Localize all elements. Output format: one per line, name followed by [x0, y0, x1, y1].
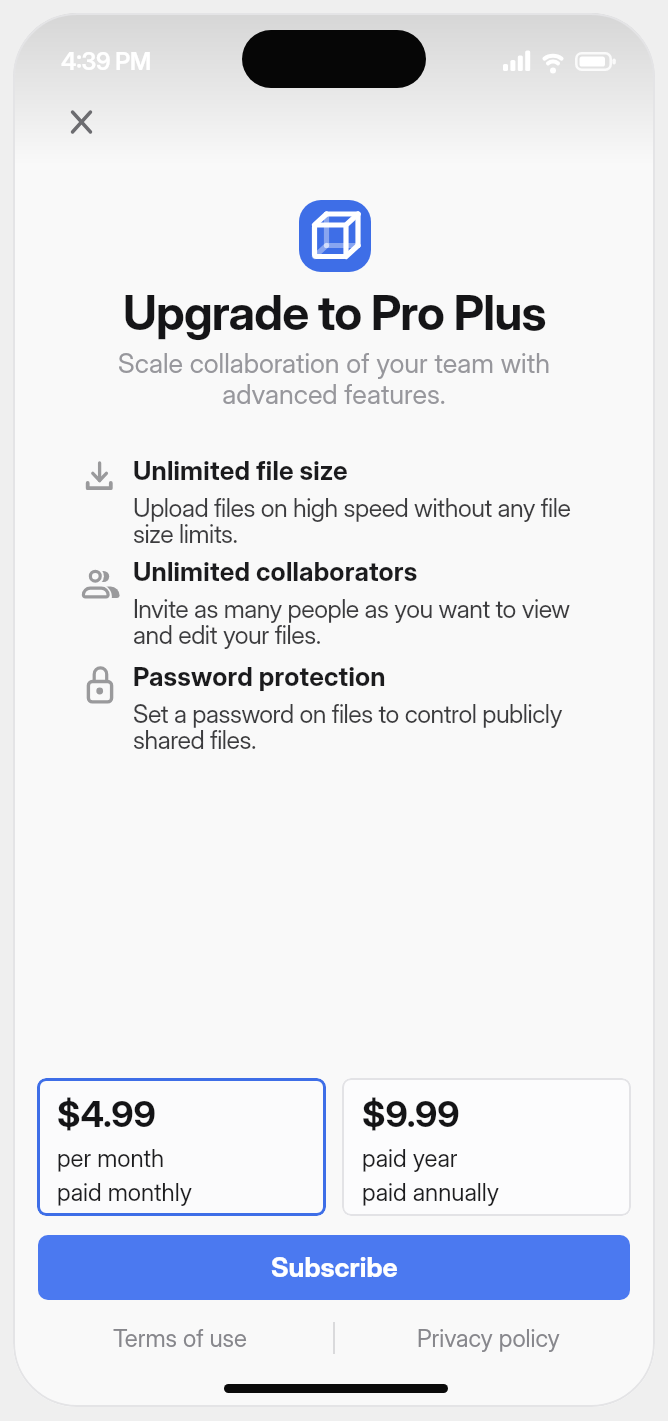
staticText: Unlimited collaborators	[133, 556, 418, 587]
staticText: Set a password on files to control publi…	[133, 699, 563, 755]
staticText: Privacy policy	[417, 1324, 560, 1353]
button[interactable]: Privacy policy	[335, 1316, 655, 1360]
staticText: paid monthly	[57, 1178, 192, 1207]
button[interactable]: $4.99	[37, 1078, 326, 1216]
button[interactable]: Subscribe	[38, 1235, 630, 1300]
staticText: Upload files on high speed without any f…	[133, 493, 571, 549]
staticText: Terms of use	[113, 1324, 247, 1353]
staticText: per month	[57, 1144, 165, 1173]
staticText: 4:39 PM	[61, 47, 151, 76]
button[interactable]: $9.99	[342, 1078, 631, 1216]
staticText: Upgrade to Pro Plus	[123, 283, 546, 341]
staticText: paid year	[362, 1144, 458, 1173]
button[interactable]	[58, 99, 104, 145]
button[interactable]: Terms of use	[13, 1316, 333, 1360]
staticText: Password protection	[133, 661, 386, 692]
staticText: $9.99	[362, 1092, 460, 1136]
staticText: Unlimited file size	[133, 455, 348, 486]
staticText: paid annually	[362, 1178, 500, 1207]
staticText: Scale collaboration of your team with ad…	[118, 347, 550, 410]
staticText: Invite as many people as you want to vie…	[133, 594, 570, 650]
staticText: $4.99	[57, 1092, 156, 1136]
staticText: Subscribe	[271, 1251, 398, 1284]
